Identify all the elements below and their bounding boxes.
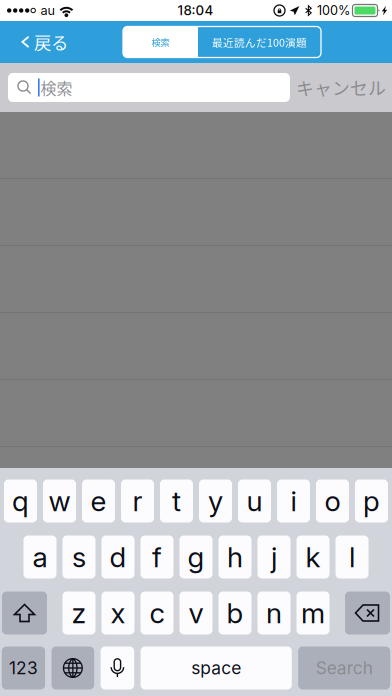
button[interactable]: p bbox=[355, 479, 388, 522]
staticText: v bbox=[188, 596, 203, 630]
staticText: 123 bbox=[9, 657, 38, 678]
button[interactable]: a bbox=[23, 535, 56, 578]
staticText: d bbox=[109, 540, 126, 574]
staticText: n bbox=[266, 596, 282, 630]
staticText: f bbox=[152, 540, 162, 574]
staticText: 100% bbox=[317, 3, 350, 18]
staticText: s bbox=[72, 540, 86, 574]
staticText: x bbox=[110, 596, 125, 630]
staticText: 検索 bbox=[41, 76, 73, 99]
button[interactable]: y bbox=[199, 479, 232, 522]
button[interactable]: q bbox=[4, 479, 37, 522]
staticText: g bbox=[187, 540, 204, 574]
staticText: a bbox=[32, 540, 47, 574]
staticText: au bbox=[40, 3, 54, 18]
staticText: i bbox=[290, 484, 296, 518]
staticText: p bbox=[363, 484, 380, 518]
staticText: r bbox=[132, 484, 142, 518]
button[interactable]: c bbox=[140, 591, 173, 634]
staticText: 検索 bbox=[151, 35, 169, 49]
button[interactable]: 戻る bbox=[0, 21, 80, 63]
staticText: キャンセル bbox=[296, 75, 386, 100]
staticText: h bbox=[227, 540, 243, 574]
button[interactable]: 123 bbox=[2, 646, 45, 689]
button[interactable]: z bbox=[62, 591, 95, 634]
staticText: u bbox=[246, 484, 262, 518]
staticText: c bbox=[149, 596, 164, 630]
button[interactable]: Delete bbox=[345, 591, 390, 634]
button[interactable]: u bbox=[238, 479, 271, 522]
staticText: Search bbox=[316, 657, 373, 678]
button[interactable]: j bbox=[257, 535, 290, 578]
button[interactable]: k bbox=[296, 535, 329, 578]
staticText: q bbox=[12, 484, 29, 518]
button[interactable]: Shift bbox=[2, 591, 47, 634]
staticText: l bbox=[349, 540, 355, 574]
staticText: z bbox=[71, 596, 86, 630]
button[interactable]: space bbox=[141, 646, 292, 689]
button[interactable]: Next keyboard bbox=[51, 646, 94, 689]
staticText: j bbox=[271, 540, 277, 574]
button[interactable]: w bbox=[43, 479, 76, 522]
staticText: 最近読んだ100演題 bbox=[212, 34, 307, 50]
button[interactable]: t bbox=[160, 479, 193, 522]
button[interactable]: o bbox=[316, 479, 349, 522]
button[interactable]: e bbox=[82, 479, 115, 522]
button[interactable]: h bbox=[218, 535, 251, 578]
staticText: w bbox=[48, 484, 70, 518]
staticText: 戻る bbox=[34, 29, 68, 55]
staticText: m bbox=[301, 596, 325, 630]
button[interactable]: f bbox=[140, 535, 173, 578]
button[interactable]: i bbox=[277, 479, 310, 522]
button[interactable]: g bbox=[179, 535, 212, 578]
button[interactable]: 検索 bbox=[123, 26, 198, 57]
button[interactable]: b bbox=[218, 591, 251, 634]
staticText: k bbox=[305, 540, 320, 574]
button[interactable]: s bbox=[62, 535, 95, 578]
staticText: 18:04 bbox=[177, 2, 213, 18]
button[interactable]: 最近読んだ100演題 bbox=[198, 26, 321, 57]
button[interactable]: d bbox=[101, 535, 134, 578]
staticText: b bbox=[226, 596, 243, 630]
button[interactable]: v bbox=[179, 591, 212, 634]
staticText: y bbox=[208, 484, 223, 518]
staticText: space bbox=[191, 657, 241, 678]
staticText: o bbox=[324, 484, 340, 518]
button[interactable]: x bbox=[101, 591, 134, 634]
button[interactable]: Dictate bbox=[101, 646, 134, 689]
staticText: t bbox=[172, 484, 181, 518]
button[interactable]: l bbox=[335, 535, 368, 578]
staticText: e bbox=[90, 484, 106, 518]
button[interactable]: m bbox=[296, 591, 329, 634]
button[interactable]: r bbox=[121, 479, 154, 522]
button[interactable]: n bbox=[257, 591, 290, 634]
button[interactable]: キャンセル bbox=[290, 63, 392, 112]
button[interactable]: Search bbox=[298, 646, 390, 689]
